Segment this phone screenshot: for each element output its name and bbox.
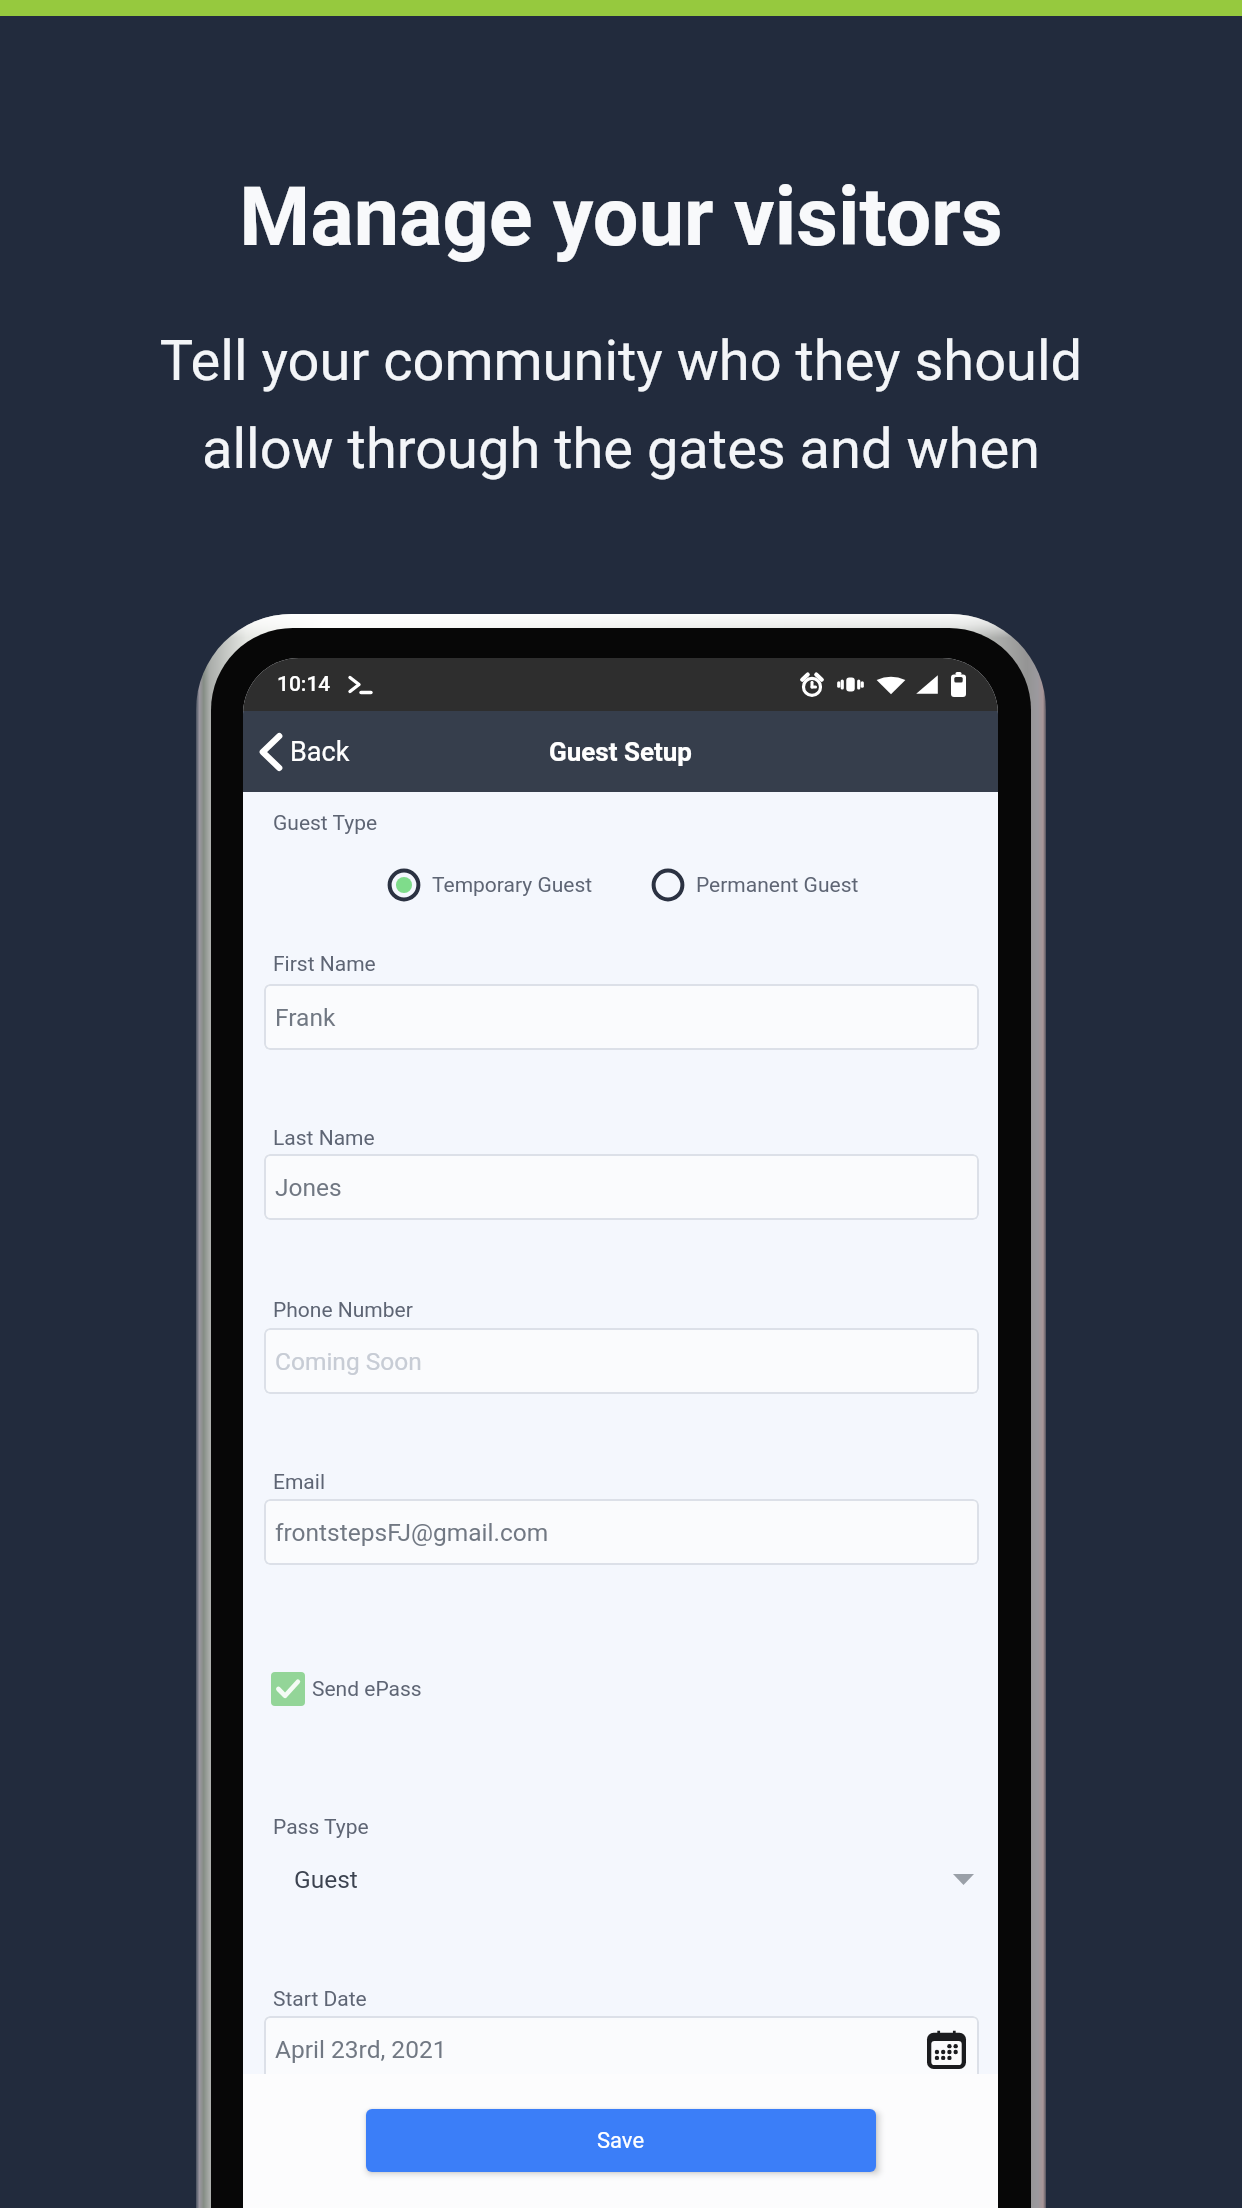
staticText: Permanent Guest bbox=[696, 873, 859, 898]
staticText: Phone Number bbox=[273, 1298, 413, 1323]
staticText: Coming Soon bbox=[275, 1347, 422, 1376]
staticText: April 23rd, 2021 bbox=[275, 2035, 447, 2064]
button[interactable]: Jones bbox=[264, 1154, 979, 1220]
button[interactable]: April 23rd, 2021 bbox=[264, 2016, 979, 2082]
staticText: Temporary Guest bbox=[432, 873, 593, 898]
staticText: 10:14 bbox=[277, 672, 331, 697]
staticText: Back bbox=[290, 736, 350, 768]
staticText: Pass Type bbox=[273, 1815, 369, 1840]
staticText: Send ePass bbox=[312, 1677, 422, 1702]
staticText: Guest bbox=[294, 1865, 358, 1894]
staticText: First Name bbox=[273, 952, 376, 977]
button[interactable]: Frank bbox=[264, 984, 979, 1050]
button[interactable]: Back bbox=[243, 722, 364, 782]
staticText: Guest Setup bbox=[549, 737, 692, 767]
staticText: Save bbox=[597, 2128, 645, 2154]
button[interactable]: Coming Soon bbox=[264, 1328, 979, 1394]
button[interactable]: Permanent Guest bbox=[651, 866, 859, 904]
staticText: Tell your community who they should allo… bbox=[0, 328, 1242, 481]
staticText: Manage your visitors bbox=[0, 170, 1242, 265]
button[interactable]: Save bbox=[366, 2109, 876, 2172]
staticText: Start Date bbox=[273, 1987, 367, 2012]
staticText: Email bbox=[273, 1470, 325, 1495]
button[interactable]: frontstepsFJ@gmail.com bbox=[264, 1499, 979, 1565]
button[interactable]: Temporary Guest bbox=[387, 866, 593, 904]
staticText: Jones bbox=[275, 1173, 342, 1202]
button[interactable]: Send ePass bbox=[271, 1672, 422, 1706]
staticText: Frank bbox=[275, 1003, 336, 1032]
staticText: Last Name bbox=[273, 1126, 375, 1151]
staticText: frontstepsFJ@gmail.com bbox=[275, 1518, 549, 1547]
staticText: Guest Type bbox=[273, 811, 378, 836]
other: Pick a date bbox=[925, 2028, 967, 2070]
button[interactable]: Guest bbox=[264, 1853, 979, 1905]
